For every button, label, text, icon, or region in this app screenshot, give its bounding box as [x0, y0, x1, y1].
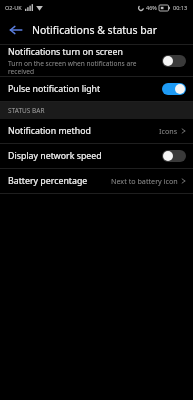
- staticText: STATUS BAR: [8, 106, 45, 115]
- button[interactable]: Back: [0, 15, 32, 44]
- staticText: Notification method: [8, 125, 91, 137]
- staticText: 00:13: [173, 4, 188, 11]
- button[interactable]: Toggle on: [162, 83, 186, 95]
- staticText: Battery percentage: [8, 175, 88, 187]
- staticText: 46%: [146, 4, 157, 11]
- button[interactable]: Pulse notification light: [0, 77, 193, 101]
- staticText: Display network speed: [8, 150, 102, 162]
- staticText: Notifications & status bar: [32, 23, 158, 37]
- button[interactable]: Notifications turn on screen: [0, 45, 193, 76]
- staticText: Next to battery icon: [111, 176, 178, 186]
- staticText: Notifications turn on screen: [8, 46, 123, 58]
- staticText: O2-UK: [5, 4, 22, 11]
- staticText: Turn on the screen when notifications ar…: [8, 59, 158, 76]
- button[interactable]: Display network speed: [0, 144, 193, 168]
- staticText: Icons: [159, 126, 178, 136]
- button[interactable]: Toggle off: [162, 150, 186, 162]
- button[interactable]: Notification method: [0, 119, 193, 143]
- button[interactable]: Toggle off: [162, 55, 186, 67]
- button[interactable]: Battery percentage: [0, 169, 193, 193]
- staticText: Pulse notification light: [8, 83, 101, 95]
